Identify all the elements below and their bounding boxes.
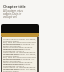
staticText: Lorem ipsum dolor sit amet, consect adip… — [3, 37, 38, 43]
staticText: irure dolor in reprehenderit in volupt v… — [3, 65, 38, 71]
staticText: et dolore magna aliqua. Ut enim ad minim — [3, 42, 38, 48]
staticText: Chapter title — [3, 4, 26, 9]
staticText: Lorem ipsum dolor sit amet, consect adip… — [3, 52, 38, 58]
staticText: Lorem ipsum dolor sit amet, consect adip… — [3, 67, 38, 72]
staticText: aliquip ex ea commodo consequat. Duis a — [3, 62, 38, 68]
staticText: irure dolor in reprehenderit in volupt v… — [3, 50, 38, 56]
staticText: elit, sed do eiusmod tempor incid ut lab… — [3, 40, 38, 46]
staticText: adipis Duis ir — [3, 12, 22, 16]
staticText: elit, sed do eiusmod tempor incid ut lab… — [3, 70, 38, 72]
staticText: quis nostrud exercitation ullamco labori… — [3, 45, 38, 51]
staticText: elit, sed do eiusmod tempor incid ut lab… — [3, 55, 38, 61]
staticText: volupt vel — [3, 15, 17, 19]
staticText: aliquip ex ea commodo consequat. Duis a — [3, 47, 38, 53]
staticText: et dolore magna aliqua. Ut enim ad minim — [3, 57, 38, 63]
staticText: quis nostrud exercitation ullamco labori… — [3, 60, 38, 66]
staticText: All autem eius — [3, 9, 23, 13]
